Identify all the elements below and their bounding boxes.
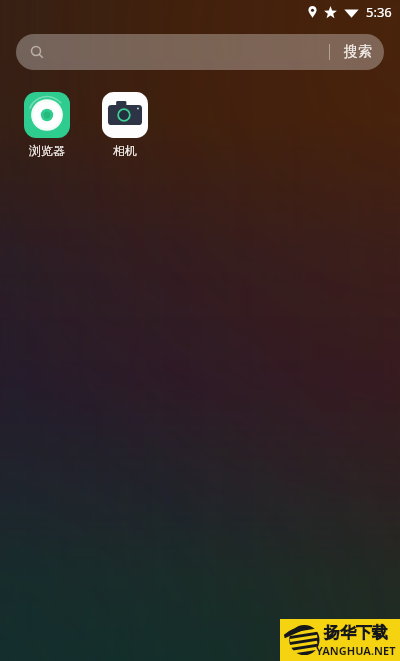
staticText: 相机 xyxy=(113,143,137,158)
staticText: YANGHUA.NET xyxy=(316,643,396,658)
staticText: 浏览器 xyxy=(29,143,65,158)
staticText: 扬华下载 xyxy=(324,623,388,643)
staticText: 5:36 xyxy=(366,3,392,21)
button[interactable]: 相机 Camera xyxy=(86,90,164,160)
button[interactable]: 搜索 xyxy=(16,34,384,70)
button[interactable]: 浏览器 Browser xyxy=(8,90,86,160)
staticText: 搜索 xyxy=(344,43,372,61)
